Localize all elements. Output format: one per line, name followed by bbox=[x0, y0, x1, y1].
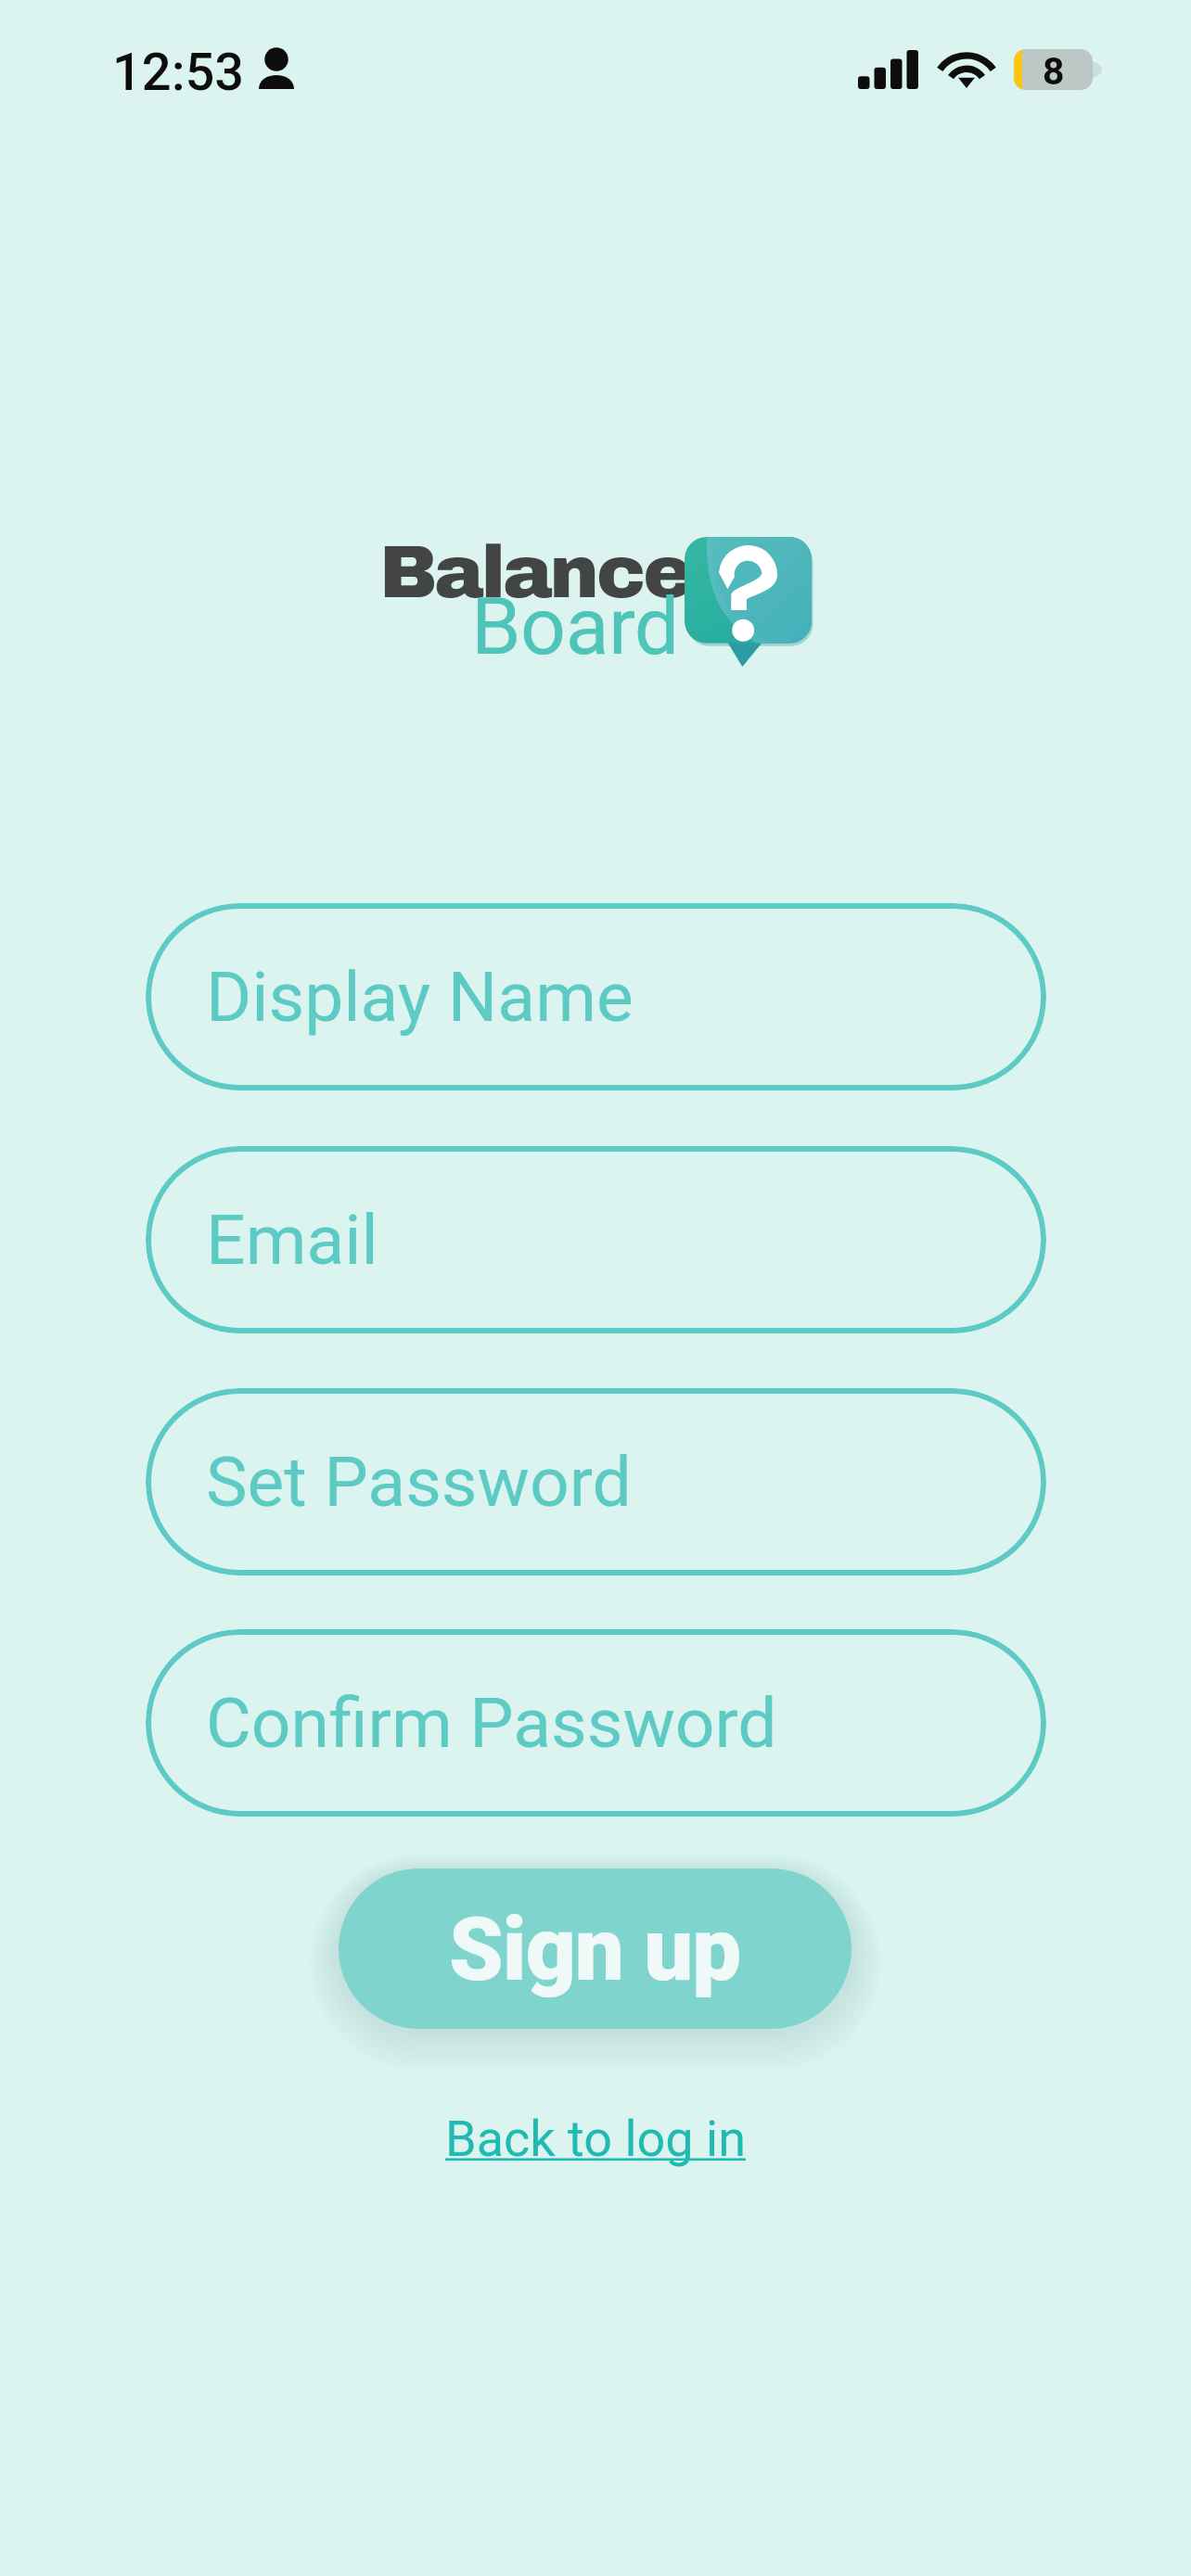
staticText: Back to log in bbox=[445, 2110, 746, 2168]
staticText: Confirm Password bbox=[206, 1682, 777, 1764]
other: Cellular signal bbox=[858, 50, 918, 89]
staticText: 8 bbox=[1043, 49, 1065, 90]
staticText: Board bbox=[471, 580, 679, 673]
staticText: Set Password bbox=[206, 1441, 632, 1523]
button[interactable]: Set Password bbox=[146, 1388, 1046, 1575]
button[interactable]: Display Name bbox=[146, 903, 1046, 1090]
staticText: Sign up bbox=[449, 1899, 741, 2001]
other: Profile bbox=[259, 52, 294, 89]
other: Wi-Fi bbox=[941, 52, 992, 88]
button[interactable]: Email bbox=[146, 1146, 1046, 1333]
button[interactable]: Confirm Password bbox=[146, 1629, 1046, 1817]
button[interactable]: Back to log in bbox=[434, 2102, 757, 2175]
staticText: 12:53 bbox=[112, 42, 245, 103]
button[interactable]: Sign up bbox=[339, 1868, 852, 2029]
other: Balance Board bbox=[371, 524, 816, 672]
staticText: Email bbox=[206, 1199, 378, 1281]
other: Battery 8 percent bbox=[1014, 49, 1093, 90]
staticText: Balance bbox=[379, 532, 690, 613]
staticText: Display Name bbox=[206, 956, 634, 1038]
